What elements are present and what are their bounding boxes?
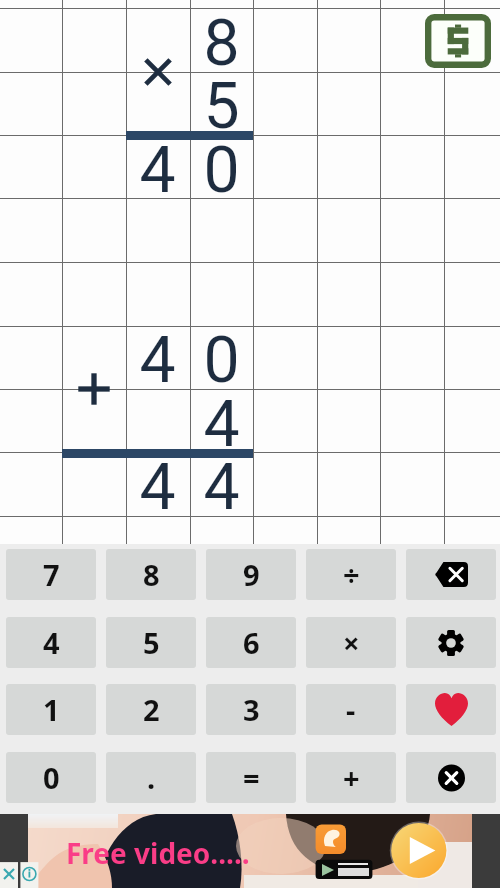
button[interactable]: + [306, 752, 396, 803]
button[interactable]: 7 [6, 549, 96, 600]
staticText: 4 [203, 449, 240, 524]
button[interactable]: 1 [6, 684, 96, 735]
staticText: 4 [203, 386, 240, 461]
button[interactable]: 4 [6, 617, 96, 668]
staticText: 0 [203, 132, 240, 207]
staticText: 0 [203, 322, 240, 397]
staticText: ÷ [343, 555, 360, 594]
button[interactable]: = [206, 752, 296, 803]
staticText: 4 [139, 132, 176, 207]
staticText: 3 [243, 690, 260, 729]
button[interactable]: - [306, 684, 396, 735]
staticText: - [346, 690, 356, 729]
button[interactable]: Favorite [406, 684, 496, 735]
staticText: × [343, 623, 360, 662]
staticText: 4 [139, 449, 176, 524]
button[interactable]: × [306, 617, 396, 668]
staticText: 5 [143, 623, 160, 662]
staticText: + [343, 758, 360, 797]
button[interactable]: Advertisement [0, 814, 500, 888]
button[interactable]: Clear [406, 752, 496, 803]
button[interactable]: Money [425, 14, 491, 68]
staticText: . [147, 758, 156, 797]
button[interactable]: Settings [406, 617, 496, 668]
staticText: 1 [43, 690, 60, 729]
button[interactable]: Backspace [406, 549, 496, 600]
staticText: 8 [143, 555, 160, 594]
staticText: 4 [43, 623, 60, 662]
staticText: 7 [43, 555, 60, 594]
button[interactable]: 8 [106, 549, 196, 600]
staticText: 4 [139, 322, 176, 397]
staticText: 5 [203, 68, 240, 143]
staticText: 9 [243, 555, 260, 594]
button[interactable]: 6 [206, 617, 296, 668]
staticText: 2 [143, 690, 160, 729]
button[interactable]: 5 [106, 617, 196, 668]
button[interactable]: . [106, 752, 196, 803]
staticText: Free video..... [66, 834, 250, 872]
staticText: 6 [243, 623, 260, 662]
staticText: 0 [43, 758, 60, 797]
button[interactable]: 0 [6, 752, 96, 803]
button[interactable]: 2 [106, 684, 196, 735]
button[interactable]: ÷ [306, 549, 396, 600]
staticText: = [243, 758, 260, 797]
button[interactable]: 9 [206, 549, 296, 600]
button[interactable]: 3 [206, 684, 296, 735]
staticText: 8 [203, 5, 240, 80]
